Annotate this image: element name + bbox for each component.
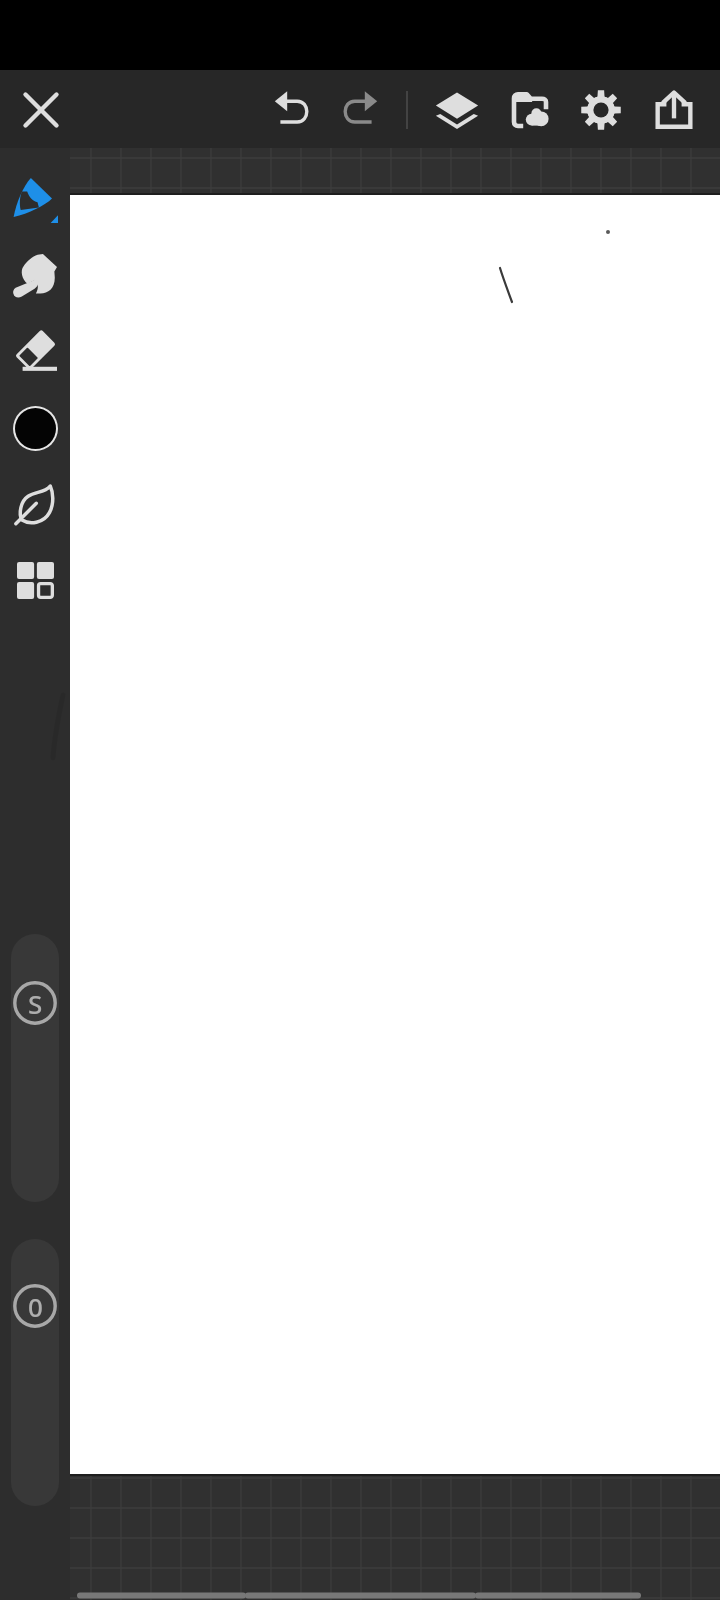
button[interactable]: Adjust S <box>11 934 59 1202</box>
staticText: 0 <box>28 1289 43 1324</box>
button[interactable]: Eraser <box>5 321 65 381</box>
button[interactable]: Layers <box>426 79 488 141</box>
button[interactable]: Tools <box>5 550 65 610</box>
button[interactable]: Close <box>11 80 71 140</box>
staticText: S <box>28 986 43 1021</box>
button[interactable]: Redo <box>328 80 388 140</box>
button[interactable]: Brush <box>5 170 65 230</box>
button[interactable]: Share <box>643 79 705 141</box>
button[interactable]: Smudge <box>5 245 65 305</box>
button[interactable]: Undo <box>264 80 324 140</box>
button[interactable]: Gallery <box>499 79 561 141</box>
button[interactable]: Effects <box>5 474 65 534</box>
button[interactable]: Adjust 0 <box>11 1239 59 1506</box>
button[interactable]: Color <box>5 398 65 458</box>
button[interactable]: Settings <box>570 79 632 141</box>
